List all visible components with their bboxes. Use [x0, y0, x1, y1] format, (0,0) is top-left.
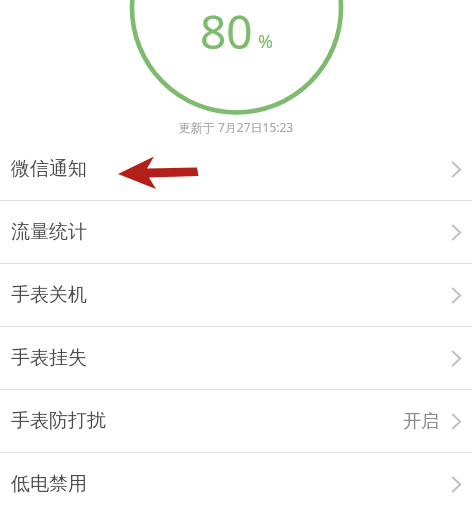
- staticText: 80: [200, 0, 253, 63]
- button[interactable]: 手表挂失: [0, 327, 472, 389]
- staticText: 微信通知: [11, 157, 87, 181]
- staticText: 更新于 7月27日15:23: [0, 119, 472, 135]
- staticText: 低电禁用: [11, 472, 87, 496]
- button[interactable]: 低电禁用: [0, 453, 472, 512]
- button[interactable]: 微信通知: [0, 138, 472, 200]
- staticText: 流量统计: [11, 220, 87, 244]
- staticText: 手表关机: [11, 283, 87, 307]
- staticText: 手表挂失: [11, 346, 87, 370]
- staticText: 手表防打扰: [11, 409, 106, 433]
- button[interactable]: 流量统计: [0, 201, 472, 263]
- button[interactable]: 手表防打扰: [0, 390, 472, 452]
- staticText: %: [258, 29, 273, 54]
- button[interactable]: 手表关机: [0, 264, 472, 326]
- staticText: 开启: [403, 410, 439, 433]
